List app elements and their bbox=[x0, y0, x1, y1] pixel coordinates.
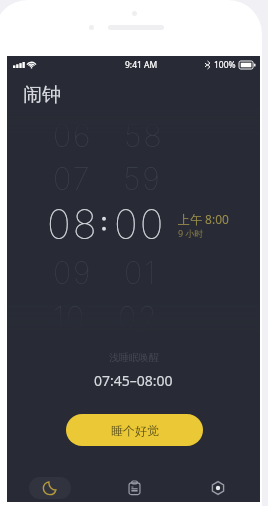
button[interactable]: Notes bbox=[121, 475, 147, 501]
staticText: 59 bbox=[123, 160, 162, 198]
staticText: 06 bbox=[53, 117, 93, 155]
staticText: 上午 8:00 bbox=[178, 211, 229, 227]
staticText: 睡个好觉 bbox=[111, 423, 159, 438]
staticText: 9:41 AM bbox=[125, 59, 158, 71]
button[interactable]: Sleep bbox=[29, 477, 71, 499]
staticText: 浅睡眠唤醒 bbox=[109, 351, 159, 364]
staticText: 闹钟 bbox=[23, 83, 61, 107]
staticText: 09 bbox=[53, 254, 93, 292]
staticText: 08 bbox=[47, 200, 99, 248]
staticText: 07:45–08:00 bbox=[94, 371, 173, 390]
staticText: 9 小时 bbox=[178, 227, 204, 239]
staticText: 01 bbox=[124, 254, 158, 292]
staticText: 58 bbox=[124, 117, 164, 155]
staticText: 07 bbox=[53, 160, 92, 198]
staticText: 100% bbox=[214, 59, 236, 71]
button[interactable]: Settings bbox=[205, 475, 231, 501]
button[interactable]: 睡个好觉 bbox=[66, 414, 203, 446]
staticText: 00 bbox=[114, 200, 166, 248]
